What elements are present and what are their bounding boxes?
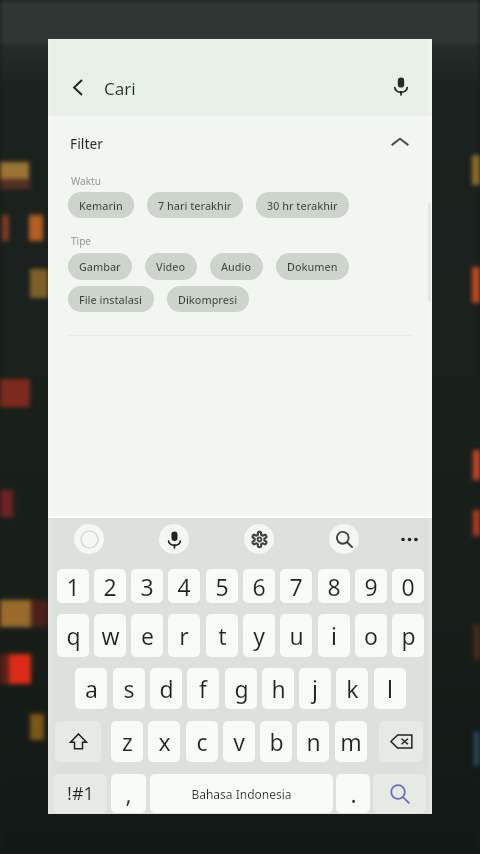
button[interactable]: t [206, 614, 238, 657]
button[interactable]: n [297, 721, 329, 762]
button[interactable]: Emoji [72, 522, 106, 556]
staticText: Waktu [71, 174, 101, 188]
button[interactable]: e [131, 614, 163, 657]
button[interactable]: y [243, 614, 275, 657]
staticText: . [350, 778, 357, 809]
button[interactable]: 2 [94, 569, 126, 603]
staticText: Filter [70, 135, 104, 153]
button[interactable]: Video [145, 253, 197, 280]
button[interactable]: 9 [355, 569, 387, 603]
button[interactable]: m [335, 721, 367, 762]
button[interactable]: Kemarin [68, 192, 134, 218]
staticText: Audio [221, 259, 252, 274]
button[interactable]: z [111, 721, 143, 762]
staticText: 7 hari terakhir [158, 198, 232, 213]
button[interactable]: i [318, 614, 350, 657]
button[interactable]: . [336, 774, 370, 813]
staticText: o [364, 620, 378, 651]
button[interactable]: 6 [243, 569, 275, 603]
button[interactable]: Voice input [157, 522, 191, 556]
staticText: 1 [66, 571, 80, 602]
staticText: Tipe [71, 234, 91, 248]
staticText: q [66, 620, 81, 651]
button[interactable]: o [355, 614, 387, 657]
button[interactable]: j [299, 668, 331, 709]
staticText: a [85, 673, 98, 704]
button[interactable]: Settings [242, 522, 276, 556]
staticText: Dikompresi [178, 292, 238, 307]
button[interactable]: Search [373, 774, 426, 813]
button[interactable]: 4 [168, 569, 200, 603]
button[interactable]: a [75, 668, 107, 709]
button[interactable]: g [225, 668, 257, 709]
button[interactable]: f [187, 668, 219, 709]
staticText: k [346, 673, 359, 704]
button[interactable]: Search [327, 522, 361, 556]
staticText: Dokumen [287, 259, 338, 274]
button[interactable]: u [280, 614, 312, 657]
button[interactable]: 0 [392, 569, 424, 603]
staticText: u [289, 620, 304, 651]
button[interactable]: c [186, 721, 218, 762]
staticText: m [340, 726, 362, 757]
button[interactable]: , [111, 774, 146, 813]
button[interactable]: Backspace [379, 721, 423, 762]
staticText: g [234, 673, 249, 704]
staticText: v [233, 726, 245, 757]
staticText: 9 [364, 571, 378, 602]
staticText: 6 [252, 571, 266, 602]
button[interactable]: l [374, 668, 406, 709]
button[interactable]: 1 [57, 569, 89, 603]
button[interactable] [48, 116, 432, 166]
button[interactable]: Gambar [68, 253, 132, 280]
staticText: b [269, 726, 284, 757]
staticText: File instalasi [79, 292, 143, 307]
button[interactable]: r [168, 614, 200, 657]
staticText: 30 hr terakhir [267, 198, 338, 213]
staticText: 5 [215, 571, 229, 602]
button[interactable]: Audio [210, 253, 263, 280]
staticText: x [158, 726, 171, 757]
staticText: y [253, 620, 265, 651]
button[interactable]: Bahasa Indonesia [150, 774, 333, 813]
staticText: Bahasa Indonesia [191, 786, 292, 802]
staticText: j [312, 673, 318, 704]
button[interactable]: h [262, 668, 294, 709]
staticText: i [331, 620, 337, 651]
staticText: 0 [401, 571, 415, 602]
button[interactable]: Collapse filter [384, 126, 416, 158]
button[interactable]: File instalasi [68, 286, 154, 312]
staticText: Cari [104, 77, 136, 100]
button[interactable]: !#1 [53, 774, 107, 813]
button[interactable]: k [336, 668, 368, 709]
button[interactable]: b [260, 721, 292, 762]
button[interactable]: Voice search [385, 70, 417, 102]
staticText: , [125, 778, 132, 809]
button[interactable]: x [148, 721, 180, 762]
button[interactable]: p [392, 614, 424, 657]
button[interactable]: 30 hr terakhir [256, 192, 349, 218]
button[interactable]: d [150, 668, 182, 709]
staticText: 8 [327, 571, 341, 602]
staticText: c [196, 726, 208, 757]
button[interactable]: Dikompresi [167, 286, 249, 312]
button[interactable]: 8 [318, 569, 350, 603]
button[interactable]: 7 hari terakhir [147, 192, 243, 218]
staticText: z [122, 726, 133, 757]
staticText: !#1 [67, 781, 94, 806]
button[interactable]: s [113, 668, 145, 709]
button[interactable]: More options [392, 522, 426, 556]
staticText: d [159, 673, 174, 704]
staticText: r [179, 620, 189, 651]
button[interactable]: Shift [55, 721, 101, 762]
button[interactable]: 3 [131, 569, 163, 603]
button[interactable]: 7 [280, 569, 312, 603]
button[interactable]: Back [61, 71, 93, 103]
button[interactable]: 5 [206, 569, 238, 603]
staticText: l [387, 673, 393, 704]
button[interactable]: w [94, 614, 126, 657]
button[interactable]: v [223, 721, 255, 762]
staticText: h [271, 673, 286, 704]
button[interactable]: q [57, 614, 89, 657]
button[interactable]: Dokumen [276, 253, 349, 280]
